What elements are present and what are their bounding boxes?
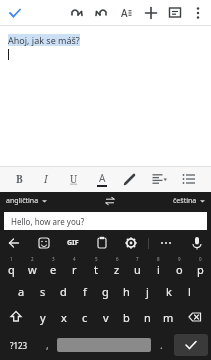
button[interactable]: a [11,279,32,304]
button[interactable]: k [158,279,179,304]
staticText: A [121,6,128,20]
button[interactable]: Bold [10,168,28,190]
staticText: s [40,284,46,299]
button[interactable]: angličtina [0,196,47,206]
button[interactable]: v [95,304,116,330]
button[interactable]: čeština [173,196,211,206]
button[interactable]: Undo [65,0,89,26]
button[interactable]: Underline [65,168,83,190]
staticText: u [134,262,141,277]
staticText: k [166,284,172,299]
button[interactable]: Text color [93,168,111,190]
button[interactable]: 5 [85,254,106,279]
button[interactable]: n [137,304,158,330]
staticText: U [70,172,78,186]
staticText: b [123,310,130,325]
button[interactable]: Comment [163,0,187,26]
button[interactable]: 0 [190,254,211,279]
button[interactable]: 3 [43,254,64,279]
staticText: a [18,284,25,299]
button[interactable]: g [95,279,116,304]
button[interactable]: Back [0,232,28,254]
staticText: w [28,262,37,277]
button[interactable]: More options [187,0,209,26]
button[interactable]: Alignment [149,168,169,190]
staticText: ?123 [10,340,28,351]
button[interactable]: Swap languages [100,192,120,210]
staticText: r [72,262,77,277]
staticText: čeština [173,196,197,206]
staticText: m [163,310,174,325]
staticText: A [99,171,106,185]
button[interactable]: b [116,304,137,330]
button[interactable]: y [32,304,53,330]
button[interactable]: 8 [148,254,169,279]
button[interactable]: , [37,330,57,360]
button[interactable]: Highlight [121,168,139,190]
staticText: 9 [178,256,181,262]
staticText: t [94,262,98,277]
button[interactable]: Space [57,338,151,352]
staticText: , [46,338,49,352]
staticText: n [144,310,151,325]
staticText: f [83,284,87,299]
button[interactable]: Hello, how are you? [4,212,207,230]
button[interactable]: s [32,279,53,304]
button[interactable]: c [74,304,95,330]
staticText: i [157,262,160,277]
staticText: h [123,284,130,299]
staticText: y [40,310,46,325]
staticText: 7 [136,256,139,262]
staticText: I [44,172,48,186]
staticText: 1 [10,256,13,262]
button[interactable]: Insert [139,0,163,26]
staticText: o [176,262,183,277]
button[interactable]: GIF [60,232,86,254]
button[interactable]: m [158,304,179,330]
button[interactable]: Voice input [183,232,211,254]
staticText: c [82,310,88,325]
staticText: e [50,262,57,277]
staticText: q [8,262,15,277]
button[interactable]: Enter [174,334,208,356]
staticText: j [146,284,149,299]
staticText: angličtina [6,196,39,206]
staticText: 0 [199,256,202,262]
button[interactable]: l [179,279,200,304]
button[interactable]: Settings [119,232,143,254]
button[interactable]: More [154,232,178,254]
button[interactable]: d [53,279,74,304]
staticText: 8 [157,256,160,262]
button[interactable]: . [151,330,171,360]
button[interactable]: Formatting [113,0,139,26]
button[interactable]: 9 [169,254,190,279]
staticText: l [188,284,191,299]
button[interactable]: 4 [64,254,85,279]
staticText: 2 [31,256,34,262]
button[interactable]: 6 [106,254,127,279]
button[interactable]: 7 [127,254,148,279]
button[interactable]: Backspace [179,304,211,330]
staticText: 4 [73,256,76,262]
button[interactable]: j [137,279,158,304]
staticText: 5 [95,256,98,262]
button[interactable]: Save [0,0,30,26]
staticText: 3 [52,256,55,262]
button[interactable]: x [53,304,74,330]
button[interactable]: 2 [22,254,43,279]
button[interactable]: 1 [0,254,22,279]
button[interactable]: h [116,279,137,304]
button[interactable]: Bulleted list [179,168,199,190]
button[interactable]: f [74,279,95,304]
staticText: v [103,310,109,325]
button[interactable]: Italic [37,168,55,190]
button[interactable]: ?123 [0,330,37,360]
staticText: p [197,262,204,277]
staticText: Ahoj, jak se máš? [8,34,80,46]
staticText: B [16,172,23,186]
button[interactable]: Redo [89,0,113,26]
button[interactable]: Stickers [32,232,56,254]
button[interactable]: Shift [0,304,32,330]
button[interactable]: Clipboard [90,232,114,254]
staticText: GIF [67,238,79,248]
